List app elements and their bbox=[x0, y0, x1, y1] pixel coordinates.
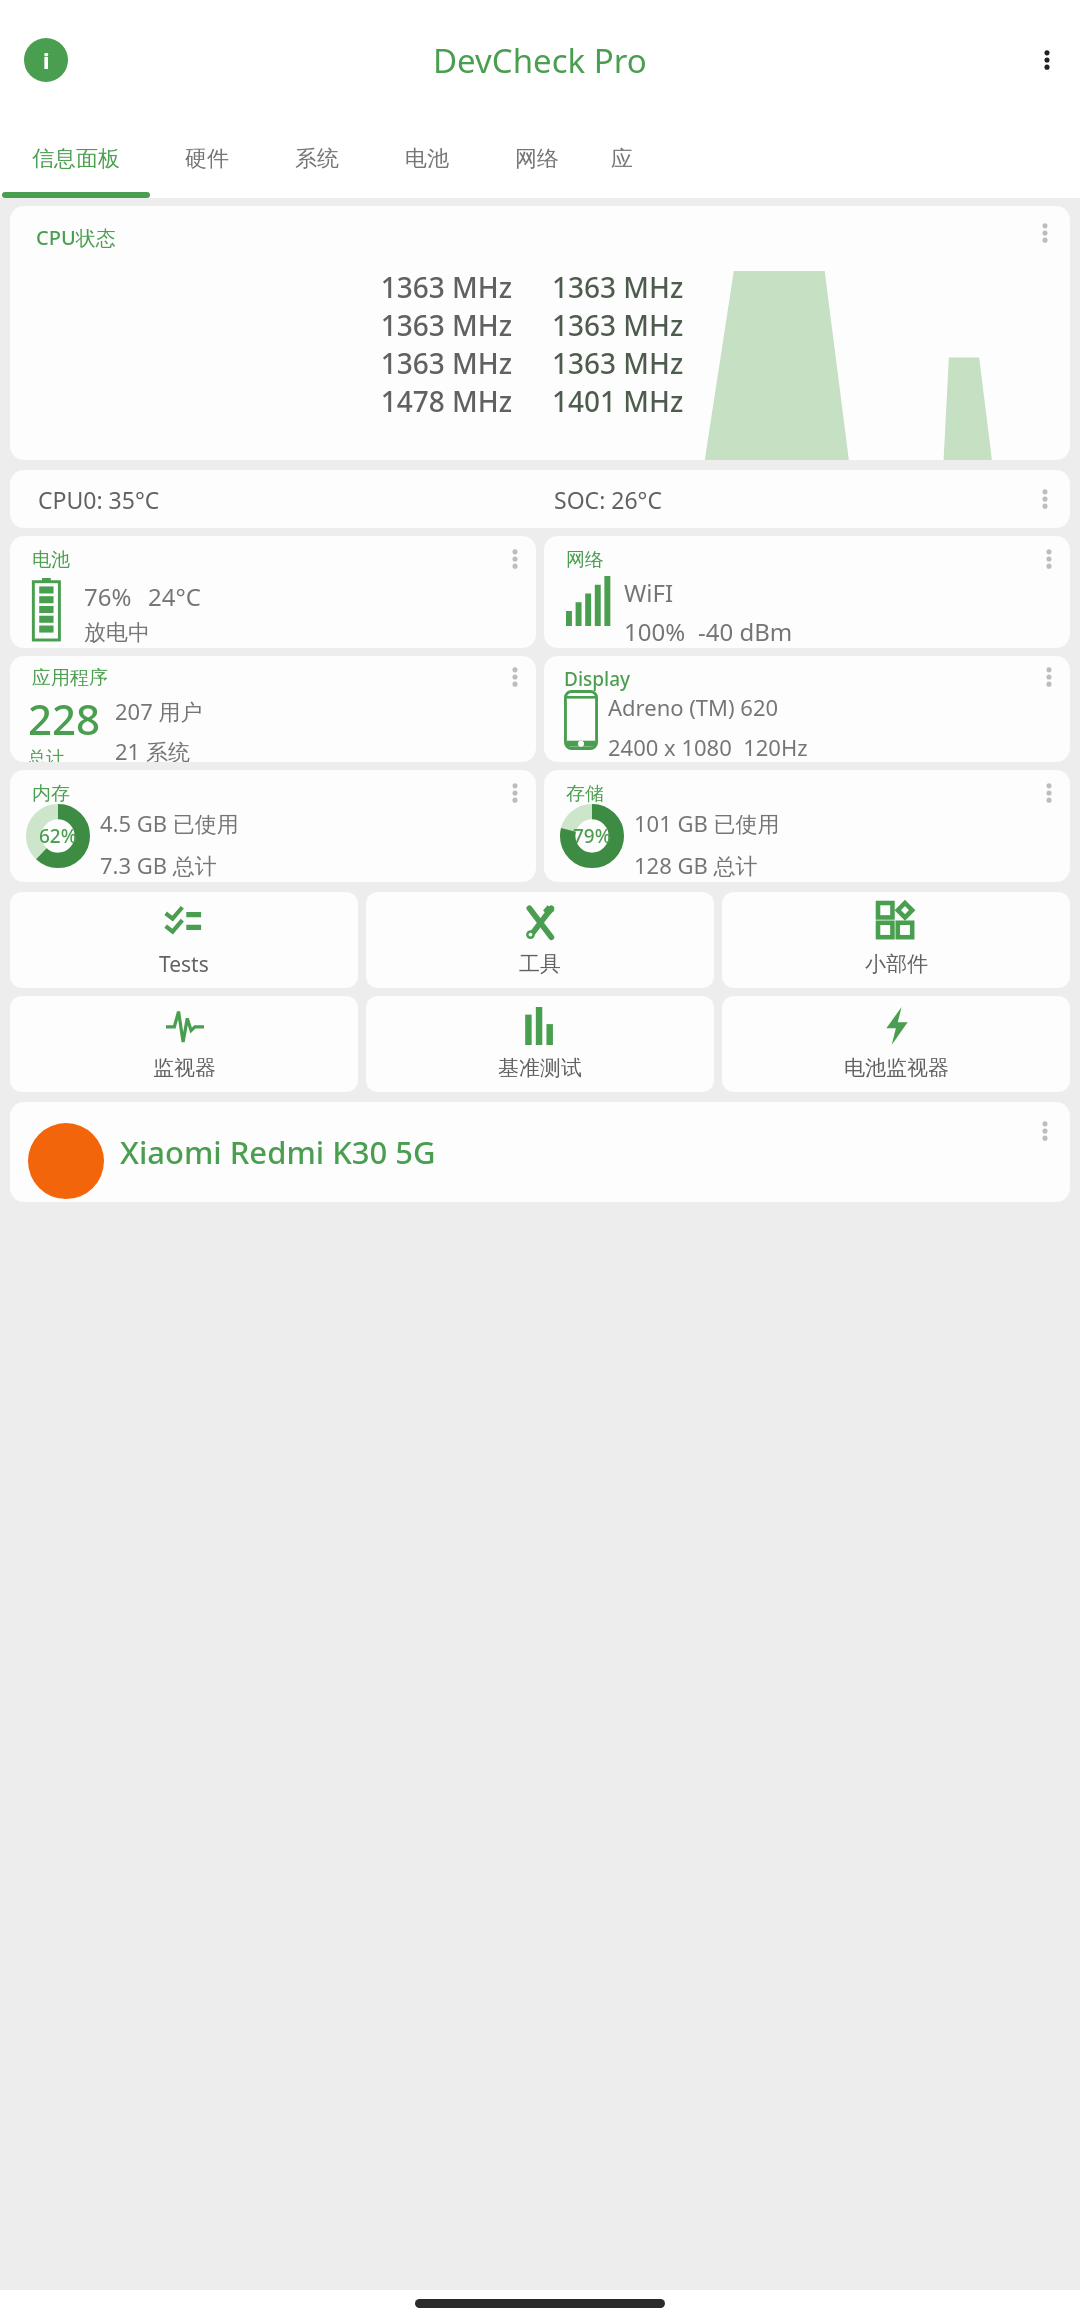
staticText: Xiaomi Redmi K30 5G bbox=[120, 1131, 436, 1173]
button[interactable]: 应用程序 bbox=[10, 656, 536, 762]
staticText: 放电中 bbox=[84, 619, 150, 647]
staticText: 电池 bbox=[405, 145, 449, 173]
button[interactable]: More options bbox=[498, 542, 532, 576]
button[interactable]: More options bbox=[1030, 43, 1064, 77]
button[interactable]: 基准测试 bbox=[366, 996, 714, 1092]
staticText: 1478 MHz bbox=[10, 382, 512, 420]
staticText: Adreno (TM) 620 bbox=[608, 692, 779, 722]
staticText: Display bbox=[564, 666, 631, 692]
staticText: 存储 bbox=[566, 782, 604, 806]
button[interactable]: App info bbox=[14, 28, 78, 92]
button[interactable]: More options bbox=[498, 776, 532, 810]
button[interactable]: Tests bbox=[10, 892, 358, 988]
staticText: 21 系统 bbox=[115, 736, 190, 762]
staticText: 1363 MHz bbox=[552, 306, 1070, 344]
staticText: 1363 MHz bbox=[10, 268, 512, 306]
button[interactable]: More options bbox=[1028, 216, 1062, 250]
button[interactable]: 网络 bbox=[544, 536, 1070, 648]
staticText: 应用程序 bbox=[32, 666, 108, 690]
staticText: 电池监视器 bbox=[844, 1055, 949, 1081]
staticText: 76% bbox=[84, 580, 132, 613]
staticText: 101 GB 已使用 bbox=[634, 808, 780, 838]
button[interactable]: 监视器 bbox=[10, 996, 358, 1092]
staticText: 监视器 bbox=[153, 1055, 216, 1081]
button[interactable]: 硬件 bbox=[152, 120, 262, 198]
button[interactable]: More options bbox=[1032, 776, 1066, 810]
staticText: 总计 bbox=[28, 747, 64, 762]
staticText: 网络 bbox=[515, 145, 559, 173]
staticText: 小部件 bbox=[865, 951, 928, 977]
staticText: 4.5 GB 已使用 bbox=[100, 808, 239, 838]
staticText: Tests bbox=[159, 950, 209, 979]
staticText: 网络 bbox=[566, 548, 604, 572]
staticText: 应 bbox=[611, 145, 633, 173]
button[interactable]: More options bbox=[1028, 482, 1062, 516]
staticText: CPU状态 bbox=[36, 224, 116, 251]
staticText: 工具 bbox=[519, 951, 561, 977]
button[interactable]: 存储 bbox=[544, 770, 1070, 882]
staticText: 1363 MHz bbox=[552, 268, 1070, 306]
button[interactable]: 系统 bbox=[262, 120, 372, 198]
staticText: 7.3 GB 总计 bbox=[100, 850, 217, 880]
staticText: 1401 MHz bbox=[552, 382, 1070, 420]
staticText: 24°C bbox=[148, 580, 201, 613]
staticText: WiFI bbox=[624, 576, 674, 609]
staticText: CPU0: 35°C bbox=[38, 484, 554, 515]
button[interactable]: 内存 bbox=[10, 770, 536, 882]
button[interactable]: 电池 bbox=[372, 120, 482, 198]
button[interactable]: 网络 bbox=[482, 120, 592, 198]
button[interactable]: Display bbox=[544, 656, 1070, 762]
button[interactable]: 应 bbox=[592, 120, 652, 198]
staticText: i bbox=[43, 45, 50, 75]
staticText: 基准测试 bbox=[498, 1055, 582, 1081]
button[interactable]: 信息面板 bbox=[0, 120, 152, 198]
staticText: 内存 bbox=[32, 782, 70, 806]
staticText: DevCheck Pro bbox=[433, 38, 647, 83]
staticText: 电池 bbox=[32, 548, 70, 572]
staticText: 207 用户 bbox=[115, 696, 203, 726]
button[interactable]: CPU0: 35°C bbox=[10, 470, 1070, 528]
button[interactable]: More options bbox=[1028, 1114, 1062, 1148]
staticText: 2400 x 1080 120Hz bbox=[608, 732, 808, 762]
button[interactable]: 工具 bbox=[366, 892, 714, 988]
button[interactable]: More options bbox=[1032, 660, 1066, 694]
button[interactable]: More options bbox=[498, 660, 532, 694]
button[interactable]: 电池 bbox=[10, 536, 536, 648]
button[interactable]: More options bbox=[1032, 542, 1066, 576]
staticText: 硬件 bbox=[185, 145, 229, 173]
staticText: 信息面板 bbox=[32, 145, 120, 173]
staticText: 1363 MHz bbox=[552, 344, 1070, 382]
staticText: 79% bbox=[573, 823, 611, 849]
staticText: 228 bbox=[28, 690, 101, 747]
staticText: 系统 bbox=[295, 145, 339, 173]
staticText: SOC: 26°C bbox=[554, 484, 1070, 515]
button[interactable]: Xiaomi Redmi K30 5G bbox=[10, 1102, 1070, 1202]
staticText: 100% bbox=[624, 615, 686, 648]
staticText: 1363 MHz bbox=[10, 344, 512, 382]
staticText: 1363 MHz bbox=[10, 306, 512, 344]
staticText: 62% bbox=[39, 823, 77, 849]
button[interactable]: CPU状态 bbox=[10, 206, 1070, 460]
button[interactable]: 电池监视器 bbox=[722, 996, 1070, 1092]
button[interactable]: 小部件 bbox=[722, 892, 1070, 988]
staticText: 128 GB 总计 bbox=[634, 850, 758, 880]
staticText: -40 dBm bbox=[698, 615, 793, 648]
